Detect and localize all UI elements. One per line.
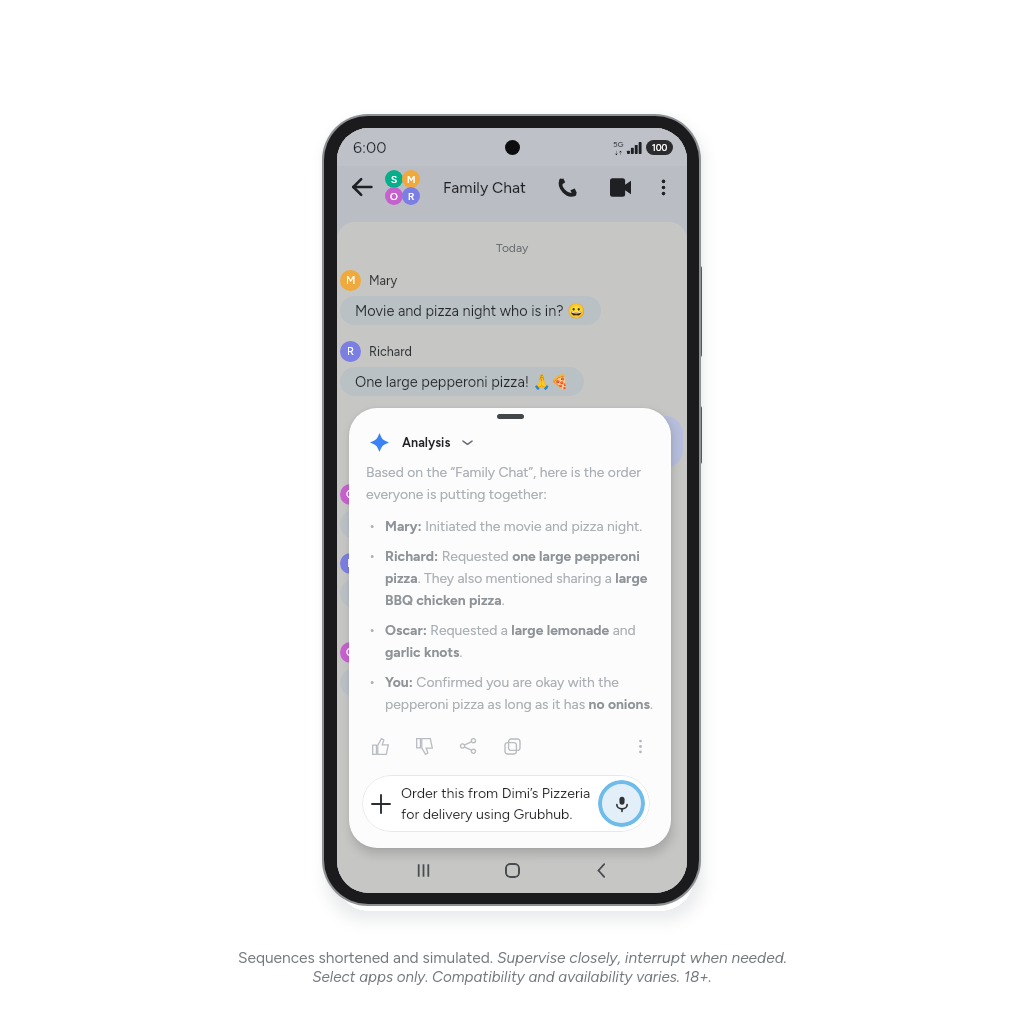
button[interactable]: O — [340, 642, 403, 663]
staticText: R — [347, 557, 354, 570]
staticText: 5G — [613, 139, 624, 149]
button[interactable]: Sounds good to me — [340, 668, 498, 697]
button[interactable]: Order this from Dimi’s Pizzeria for deli… — [362, 775, 650, 832]
staticText: • — [369, 622, 376, 638]
staticText: Oscar — [369, 645, 403, 660]
staticText: Analysis — [402, 435, 451, 450]
staticText: ↓↑ — [614, 149, 623, 156]
staticText: Today — [496, 241, 529, 255]
staticText: Movie and pizza night who is in? 😀 — [355, 302, 586, 319]
staticText: • — [369, 674, 376, 690]
button[interactable]: R — [340, 553, 412, 574]
staticText: R — [347, 345, 354, 358]
staticText: R — [408, 190, 415, 202]
button[interactable]: Chat participants — [385, 170, 420, 205]
staticText: 100 — [652, 142, 668, 153]
staticText: • — [369, 548, 376, 564]
button[interactable]: R — [340, 341, 412, 362]
button[interactable]: Video call — [603, 170, 637, 204]
staticText: Oscar — [369, 487, 403, 502]
button[interactable]: M — [340, 270, 398, 291]
button[interactable]: Collapse analysis — [366, 433, 472, 452]
staticText: Sharing a large BBQ chicken pizza — [355, 585, 575, 602]
button[interactable]: Thumbs down — [410, 732, 438, 760]
button[interactable]: Back — [581, 850, 621, 890]
staticText: One large pepperoni pizza! 🙏🍕 — [355, 373, 569, 390]
staticText: Richard: Requested one large pepperoni p… — [385, 548, 654, 609]
button[interactable]: Home — [492, 850, 532, 890]
staticText: O — [390, 190, 398, 202]
button[interactable]: Sharing a large BBQ chicken pizza — [340, 579, 590, 608]
button[interactable]: Recent apps — [403, 850, 443, 890]
staticText: You: Confirmed you are okay with the pep… — [385, 674, 654, 713]
button[interactable]: O — [340, 484, 403, 505]
button[interactable]: Back — [345, 170, 379, 204]
button[interactable]: More options — [649, 173, 677, 201]
staticText: Sequences shortened and simulated. Super… — [238, 948, 787, 967]
staticText: M — [407, 173, 416, 185]
staticText: Order this from Dimi’s Pizzeria for deli… — [401, 785, 591, 822]
button[interactable]: Voice input — [598, 780, 645, 827]
button[interactable]: Copy — [498, 732, 526, 760]
button[interactable]: Movie and pizza night who is in? 😀 — [340, 296, 601, 325]
button[interactable]: One large pepperoni pizza! 🙏🍕 — [340, 367, 584, 396]
button[interactable]: Large lemonade and garlic knots — [340, 510, 580, 539]
staticText: Mary — [369, 273, 398, 288]
staticText: Richard — [369, 556, 412, 571]
staticText: Oscar: Requested a large lemonade and ga… — [385, 622, 654, 661]
button[interactable]: Share — [454, 732, 482, 760]
staticText: Sounds good to me — [355, 674, 483, 691]
staticText: Select apps only. Compatibility and avai… — [312, 968, 712, 986]
button[interactable]: Thumbs up — [366, 732, 394, 760]
staticText: O — [346, 488, 355, 501]
staticText: S — [391, 173, 398, 185]
staticText: Family Chat — [443, 178, 526, 197]
button[interactable]: Call — [551, 170, 585, 204]
staticText: • — [369, 518, 376, 534]
staticText: O — [346, 646, 355, 659]
staticText: Based on the “Family Chat”, here is the … — [366, 464, 654, 503]
staticText: Richard — [369, 344, 412, 359]
staticText: Large lemonade and garlic knots — [355, 516, 565, 533]
staticText: M — [346, 274, 356, 287]
button[interactable]: More — [626, 732, 654, 760]
staticText: Mary: Initiated the movie and pizza nigh… — [385, 518, 643, 535]
staticText: 6:00 — [353, 138, 387, 157]
